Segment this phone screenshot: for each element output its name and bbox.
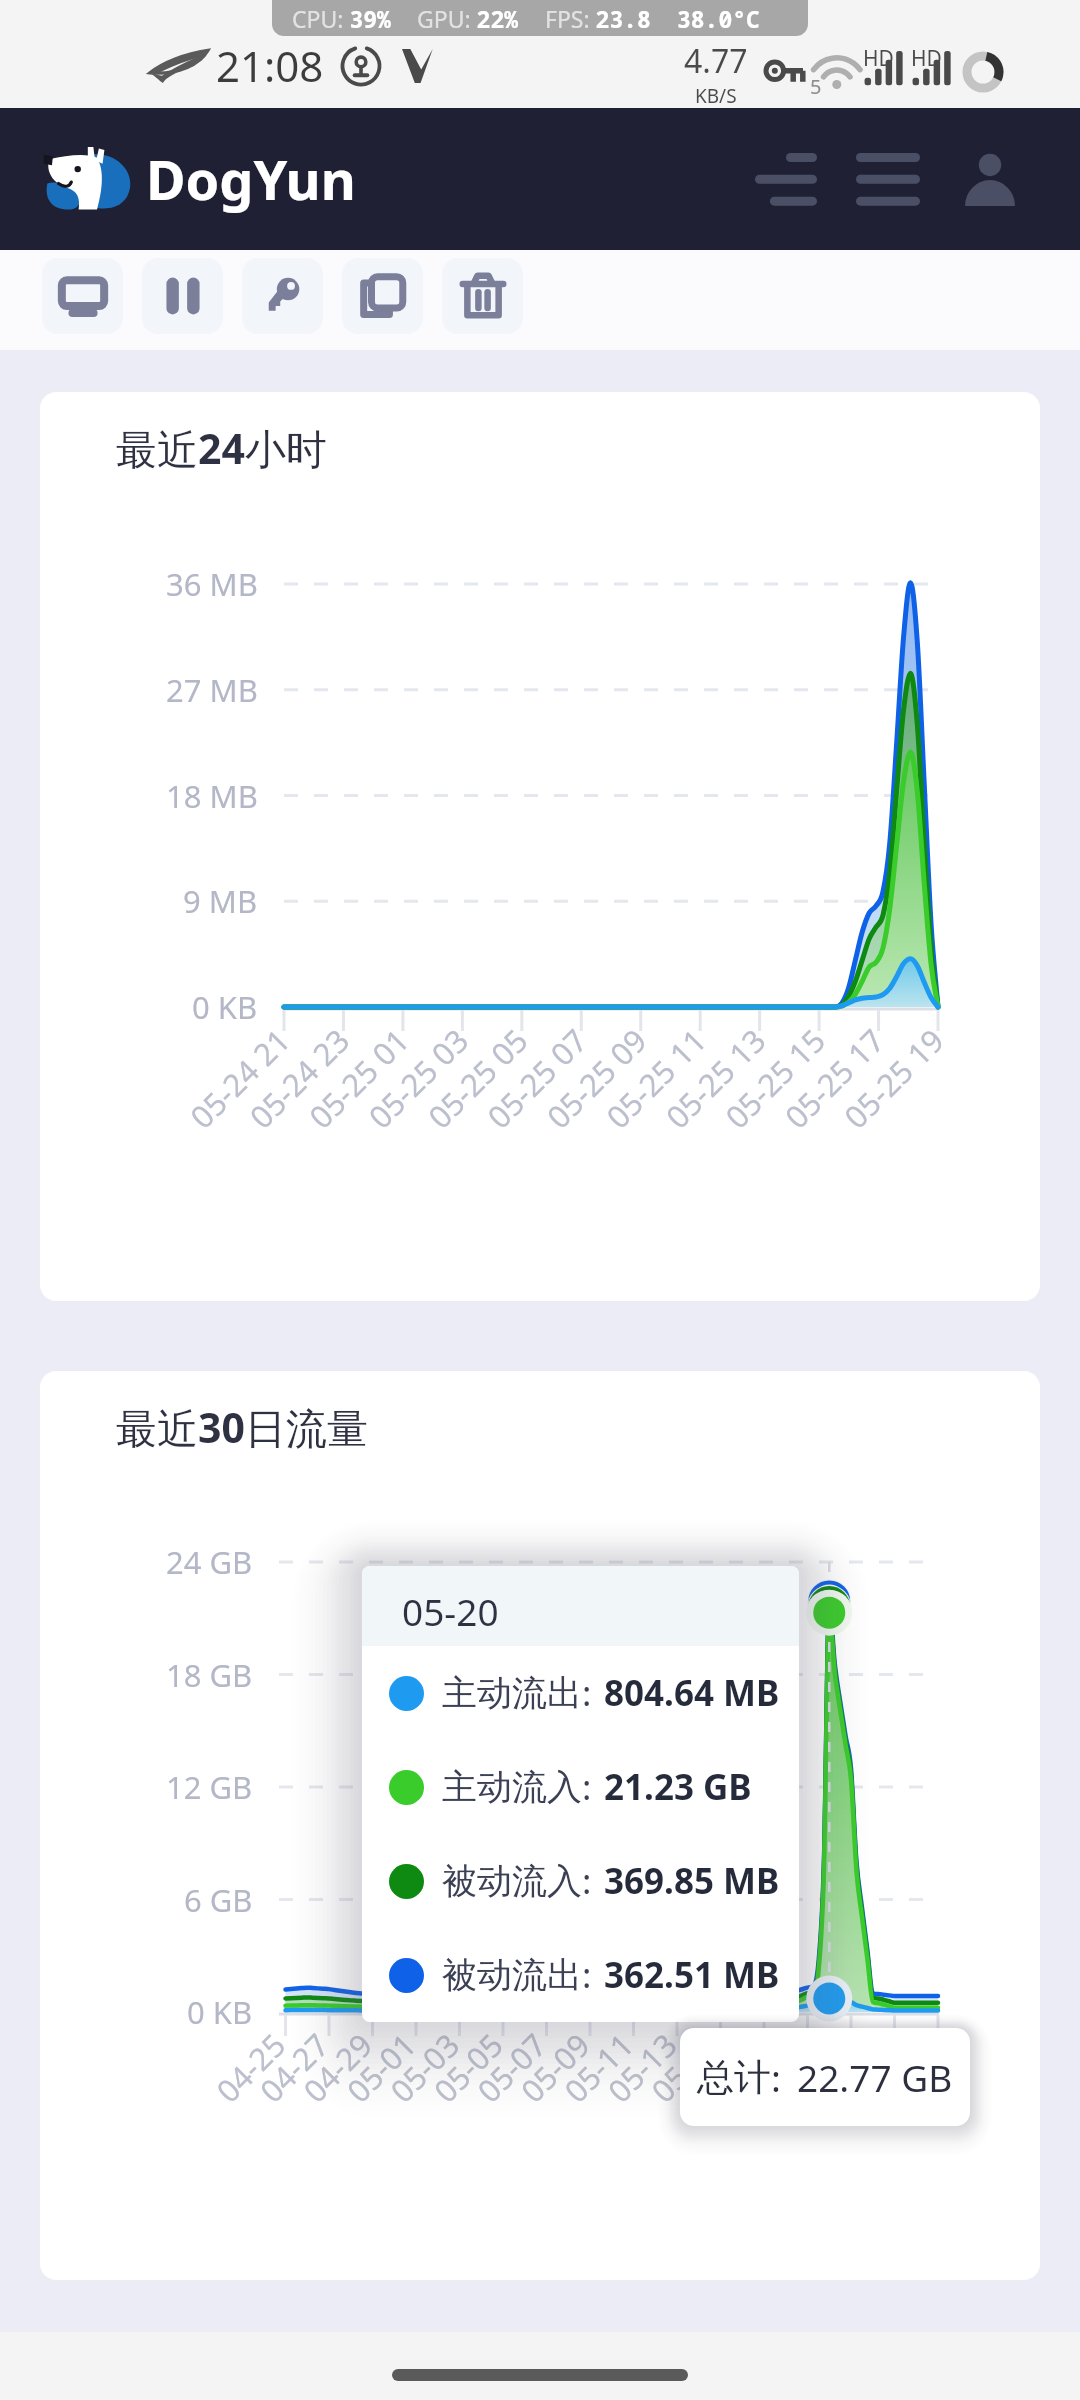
staticText: HD (863, 44, 894, 73)
staticText: 主动流入 (442, 1765, 582, 1809)
button[interactable]: Pause (142, 258, 223, 334)
staticText: GPU: 22% (417, 3, 519, 34)
staticText: : (771, 2052, 781, 2102)
staticText: 被动流入 (442, 1859, 582, 1903)
staticText: 804.64 MB (604, 1669, 780, 1717)
staticText: 362.51 MB (604, 1951, 780, 1999)
staticText: 总计 (697, 2054, 771, 2101)
staticText: 22.77 GB (797, 2052, 953, 2102)
staticText: : (582, 1669, 592, 1717)
staticText: : (582, 1857, 592, 1905)
staticText: : (582, 1951, 592, 1999)
staticText: 05-20 (402, 1586, 499, 1636)
staticText: 21.23 GB (604, 1763, 752, 1811)
staticText: DogYun (146, 142, 356, 216)
button[interactable]: Menu (844, 135, 932, 223)
staticText: 369.85 MB (604, 1857, 780, 1905)
staticText: 38.0°C (677, 3, 760, 34)
staticText: FPS: 23.8 (545, 3, 651, 34)
button[interactable]: Account (946, 135, 1034, 223)
button[interactable]: Console (42, 258, 123, 334)
staticText: 主动流出 (442, 1671, 582, 1715)
staticText: CPU: 39% (292, 3, 391, 34)
staticText: KB/S (695, 83, 737, 105)
staticText: 被动流出 (442, 1953, 582, 1997)
staticText: 5 (810, 73, 822, 100)
staticText: 最近24小时 (116, 420, 327, 476)
staticText: 4.77 (684, 39, 748, 83)
button[interactable]: Home (392, 2369, 688, 2381)
staticText: 最近30日流量 (116, 1399, 368, 1455)
button[interactable]: Delete (442, 258, 523, 334)
button[interactable]: Password (242, 258, 323, 334)
staticText: HD (911, 44, 942, 73)
button[interactable]: Sort (742, 135, 830, 223)
button[interactable]: Clone (342, 258, 423, 334)
staticText: 21:08 (216, 37, 324, 94)
staticText: : (582, 1763, 592, 1811)
